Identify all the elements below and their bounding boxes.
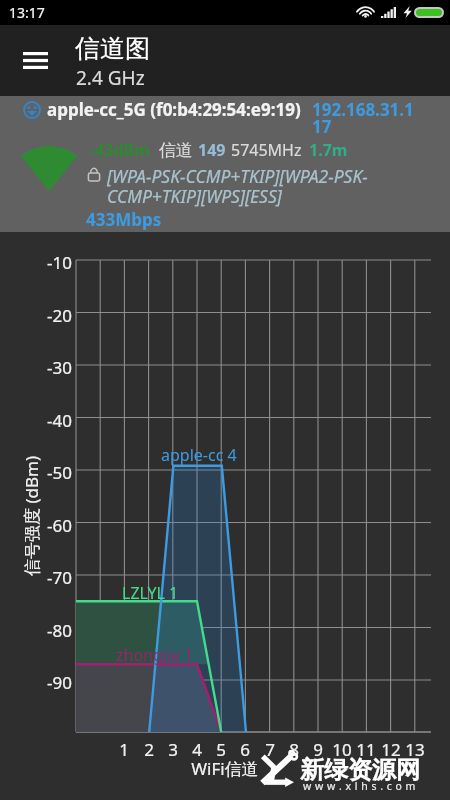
staticText: 3 — [161, 738, 185, 761]
staticText: 5 — [209, 738, 233, 761]
staticText: 11 — [354, 738, 378, 761]
staticText: 信道 — [159, 140, 193, 161]
staticText: w w w . x l h s . c o m — [303, 779, 416, 793]
staticText: 新绿资源网 — [300, 755, 420, 785]
staticText: 10 — [330, 738, 354, 761]
staticText: 4 — [185, 738, 209, 761]
button[interactable]: apple-cc_5G (f0:b4:29:54:e9:19) — [0, 96, 450, 232]
staticText: 9 — [306, 738, 330, 761]
staticText: 2 — [137, 738, 161, 761]
staticText: 信号强度 (dBm) — [20, 455, 43, 576]
staticText: -20 — [40, 304, 72, 327]
staticText: -70 — [40, 566, 72, 589]
staticText: 信道图 — [75, 33, 150, 64]
staticText: 7 — [258, 738, 282, 761]
staticText: 2.4 GHz — [76, 65, 145, 91]
staticText: 1.7m — [309, 139, 348, 161]
staticText: 5745MHz — [231, 139, 302, 161]
staticText: 13:17 — [9, 3, 45, 22]
staticText: 149 — [198, 139, 226, 161]
staticText: 6 — [233, 738, 257, 761]
staticText: 8 — [282, 738, 306, 761]
staticText: LZLYL 1 — [122, 582, 179, 604]
staticText: -10 — [40, 251, 72, 274]
staticText: -80 — [40, 619, 72, 642]
staticText: apple-cc 4 — [161, 444, 237, 466]
staticText: 12 — [379, 738, 403, 761]
staticText: -90 — [40, 671, 72, 694]
staticText: 433Mbps — [86, 208, 162, 231]
staticText: apple-cc_5G (f0:b4:29:54:e9:19) — [47, 98, 301, 121]
staticText: 1 — [112, 738, 136, 761]
staticText: -60 — [40, 514, 72, 537]
staticText: WiFi信道 — [0, 757, 450, 780]
staticText: -30 — [40, 356, 72, 379]
button[interactable]: Open navigation menu — [11, 36, 59, 84]
staticText: -43dBm — [90, 139, 150, 161]
staticText: zhongjie 1 — [116, 644, 194, 666]
staticText: 192.168.31.117 — [312, 98, 420, 138]
staticText: -40 — [40, 409, 72, 432]
staticText: [WPA-PSK-CCMP+TKIP][WPA2-PSK-CCMP+TKIP][… — [107, 164, 397, 208]
staticText: -50 — [40, 461, 72, 484]
staticText: 13 — [403, 738, 427, 761]
